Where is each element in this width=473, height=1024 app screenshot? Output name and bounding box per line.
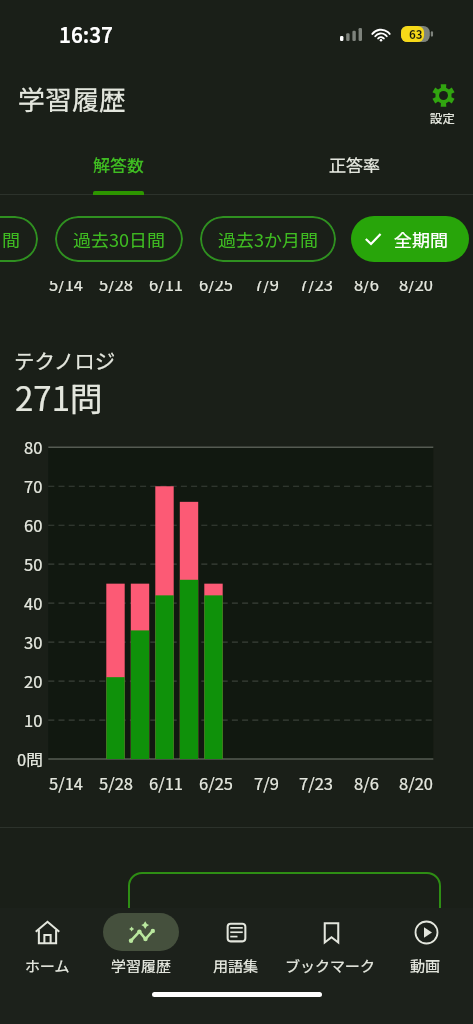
- staticText: 5/28: [99, 281, 133, 293]
- staticText: 過去3か月間: [218, 226, 318, 252]
- staticText: 7/23: [299, 281, 333, 293]
- staticText: 0問: [17, 747, 43, 771]
- staticText: 正答率: [329, 152, 380, 177]
- staticText: 7/9: [254, 771, 279, 795]
- staticText: 6/25: [199, 281, 233, 293]
- button[interactable]: 過去3か月間: [200, 216, 336, 262]
- staticText: 30: [24, 630, 43, 654]
- staticText: 5/28: [99, 771, 133, 795]
- button[interactable]: [128, 872, 441, 932]
- button[interactable]: 過去7日間: [0, 216, 38, 262]
- button[interactable]: 正答率: [236, 138, 473, 190]
- staticText: 40: [24, 591, 43, 615]
- staticText: 8/20: [399, 281, 433, 293]
- staticText: 用語集: [213, 955, 259, 977]
- staticText: 10: [24, 708, 43, 732]
- staticText: 271問: [15, 373, 103, 421]
- staticText: 20: [24, 669, 43, 693]
- staticText: 7/23: [299, 771, 333, 795]
- staticText: 過去30日間: [73, 226, 165, 252]
- staticText: テクノロジ: [14, 345, 116, 375]
- staticText: 6/25: [199, 771, 233, 795]
- staticText: 63: [409, 26, 423, 42]
- button[interactable]: 学習履歴: [94, 908, 188, 1000]
- staticText: 学習履歴: [111, 955, 172, 977]
- button[interactable]: 過去30日間: [55, 216, 183, 262]
- staticText: 6/11: [149, 281, 183, 293]
- staticText: 60: [24, 513, 43, 537]
- button[interactable]: 全期間: [351, 216, 469, 262]
- button[interactable]: 解答数: [0, 138, 236, 190]
- staticText: 5/14: [49, 771, 83, 795]
- button[interactable]: 動画: [378, 908, 473, 1000]
- staticText: 学習履歴: [18, 79, 126, 118]
- staticText: 8/6: [354, 771, 379, 795]
- staticText: 全期間: [394, 226, 448, 252]
- button[interactable]: 設定: [430, 84, 456, 126]
- button[interactable]: ホーム: [0, 908, 94, 1000]
- staticText: 動画: [410, 955, 441, 977]
- staticText: 設定: [430, 108, 456, 126]
- staticText: 16:37: [59, 19, 113, 49]
- staticText: 8/6: [354, 281, 379, 293]
- staticText: 5/14: [49, 281, 83, 293]
- staticText: 解答数: [93, 152, 144, 177]
- staticText: 80: [24, 435, 43, 459]
- button[interactable]: 用語集: [188, 908, 283, 1000]
- staticText: 7/9: [254, 281, 279, 293]
- staticText: 50: [24, 552, 43, 576]
- staticText: 過去7日間: [0, 226, 20, 252]
- staticText: 8/20: [399, 771, 433, 795]
- staticText: 70: [24, 474, 43, 498]
- staticText: ブックマーク: [285, 955, 376, 977]
- staticText: ホーム: [25, 955, 70, 977]
- button[interactable]: ブックマーク: [283, 908, 378, 1000]
- staticText: 6/11: [149, 771, 183, 795]
